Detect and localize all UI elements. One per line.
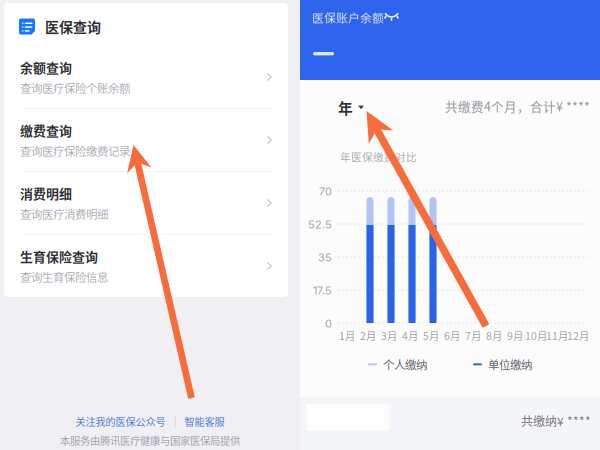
staticText: 查询生育保险信息 [20,269,108,285]
staticText: 17.5 [313,284,332,297]
staticText: 缴费查询 [20,121,72,139]
staticText: 2月 [360,328,376,343]
staticText: 单位缴纳 [488,356,532,373]
staticText: 医保账户余额 [312,9,384,26]
staticText: 查询医疗消费明细 [20,206,108,222]
staticText: 6月 [444,328,460,343]
staticText: 4月 [402,328,418,343]
staticText: 关注我的医保公众号 [75,414,165,429]
button[interactable]: 关注我的医保公众号 [75,414,165,429]
button[interactable]: 年 [338,97,364,118]
staticText: 查询医疗保险缴费记录 [20,143,130,159]
staticText: 9月 [507,328,523,343]
staticText: 年 [338,97,353,118]
button[interactable]: 余额 [313,52,334,55]
staticText: 35 [318,251,332,264]
staticText: 7月 [465,328,481,343]
staticText: 0 [325,317,332,330]
staticText: 共缴费4个月，合计¥ **** [445,97,590,115]
staticText: 52.5 [308,218,332,231]
staticText: 智能客服 [184,414,224,429]
staticText: 生育保险查询 [20,247,98,265]
button[interactable]: 缴费查询 [4,109,288,172]
staticText: | [173,415,176,427]
staticText: 11月 [546,328,568,343]
staticText: 70 [319,185,332,198]
staticText: 5月 [423,328,439,343]
staticText: 余额查询 [20,58,72,76]
staticText: 查询医疗保险个账余额 [20,80,130,96]
staticText: 年医保缴费对比 [340,149,417,164]
button[interactable]: 消费明细 [4,172,288,235]
staticText: 8月 [486,328,502,343]
staticText: 本服务由腾讯医疗健康与国家医保局提供 [60,433,240,448]
button[interactable]: 余额查询 [4,46,288,109]
staticText: 12月 [567,328,589,343]
button[interactable]: 智能客服 [184,414,224,429]
staticText: 消费明细 [20,184,72,202]
staticText: 医保查询 [45,16,101,37]
staticText: 个人缴纳 [383,356,427,373]
staticText: 1月 [339,328,355,343]
button[interactable]: 生育保险查询 [4,235,288,297]
staticText: 3月 [381,328,397,343]
staticText: 共缴纳¥ **** [521,412,591,429]
staticText: 10月 [525,328,547,343]
